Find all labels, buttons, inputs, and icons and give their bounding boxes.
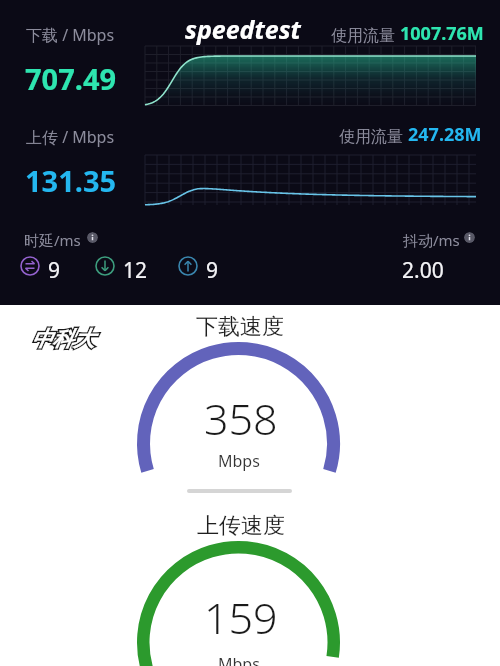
staticText: 9 xyxy=(48,256,61,285)
button[interactable]: 上传速度 xyxy=(0,504,500,666)
staticText: 707.49 xyxy=(25,59,117,98)
staticText: 1007.76M xyxy=(400,21,484,46)
staticText: 358 xyxy=(204,389,278,448)
button[interactable]: 下载速度 xyxy=(0,305,500,489)
staticText: 12 xyxy=(123,256,148,285)
staticText: 中科大 xyxy=(31,326,94,352)
staticText: 159 xyxy=(204,588,278,647)
staticText: 上传速度 xyxy=(197,512,285,540)
staticText: 使用流量 xyxy=(331,24,400,46)
staticText: speedtest xyxy=(185,12,301,46)
staticText: 9 xyxy=(206,256,219,285)
staticText: 上传 / Mbps xyxy=(26,126,115,148)
staticText: 下载 / Mbps xyxy=(26,24,115,46)
button[interactable]: More information xyxy=(87,232,98,243)
staticText: 247.28M xyxy=(408,122,482,147)
staticText: 抖动/ms xyxy=(403,230,460,250)
staticText: Mbps xyxy=(218,653,260,666)
button[interactable]: More information xyxy=(464,232,475,243)
staticText: Mbps xyxy=(218,450,260,472)
staticText: 中科大 xyxy=(31,326,94,352)
staticText: 使用流量 xyxy=(339,125,408,147)
staticText: 下载速度 xyxy=(196,313,284,341)
button[interactable]: 9 xyxy=(20,256,61,285)
staticText: 2.00 xyxy=(402,256,444,285)
button[interactable]: 9 xyxy=(178,256,219,285)
staticText: 时延/ms xyxy=(24,230,81,250)
button[interactable]: 12 xyxy=(95,256,148,285)
staticText: 131.35 xyxy=(25,161,117,200)
